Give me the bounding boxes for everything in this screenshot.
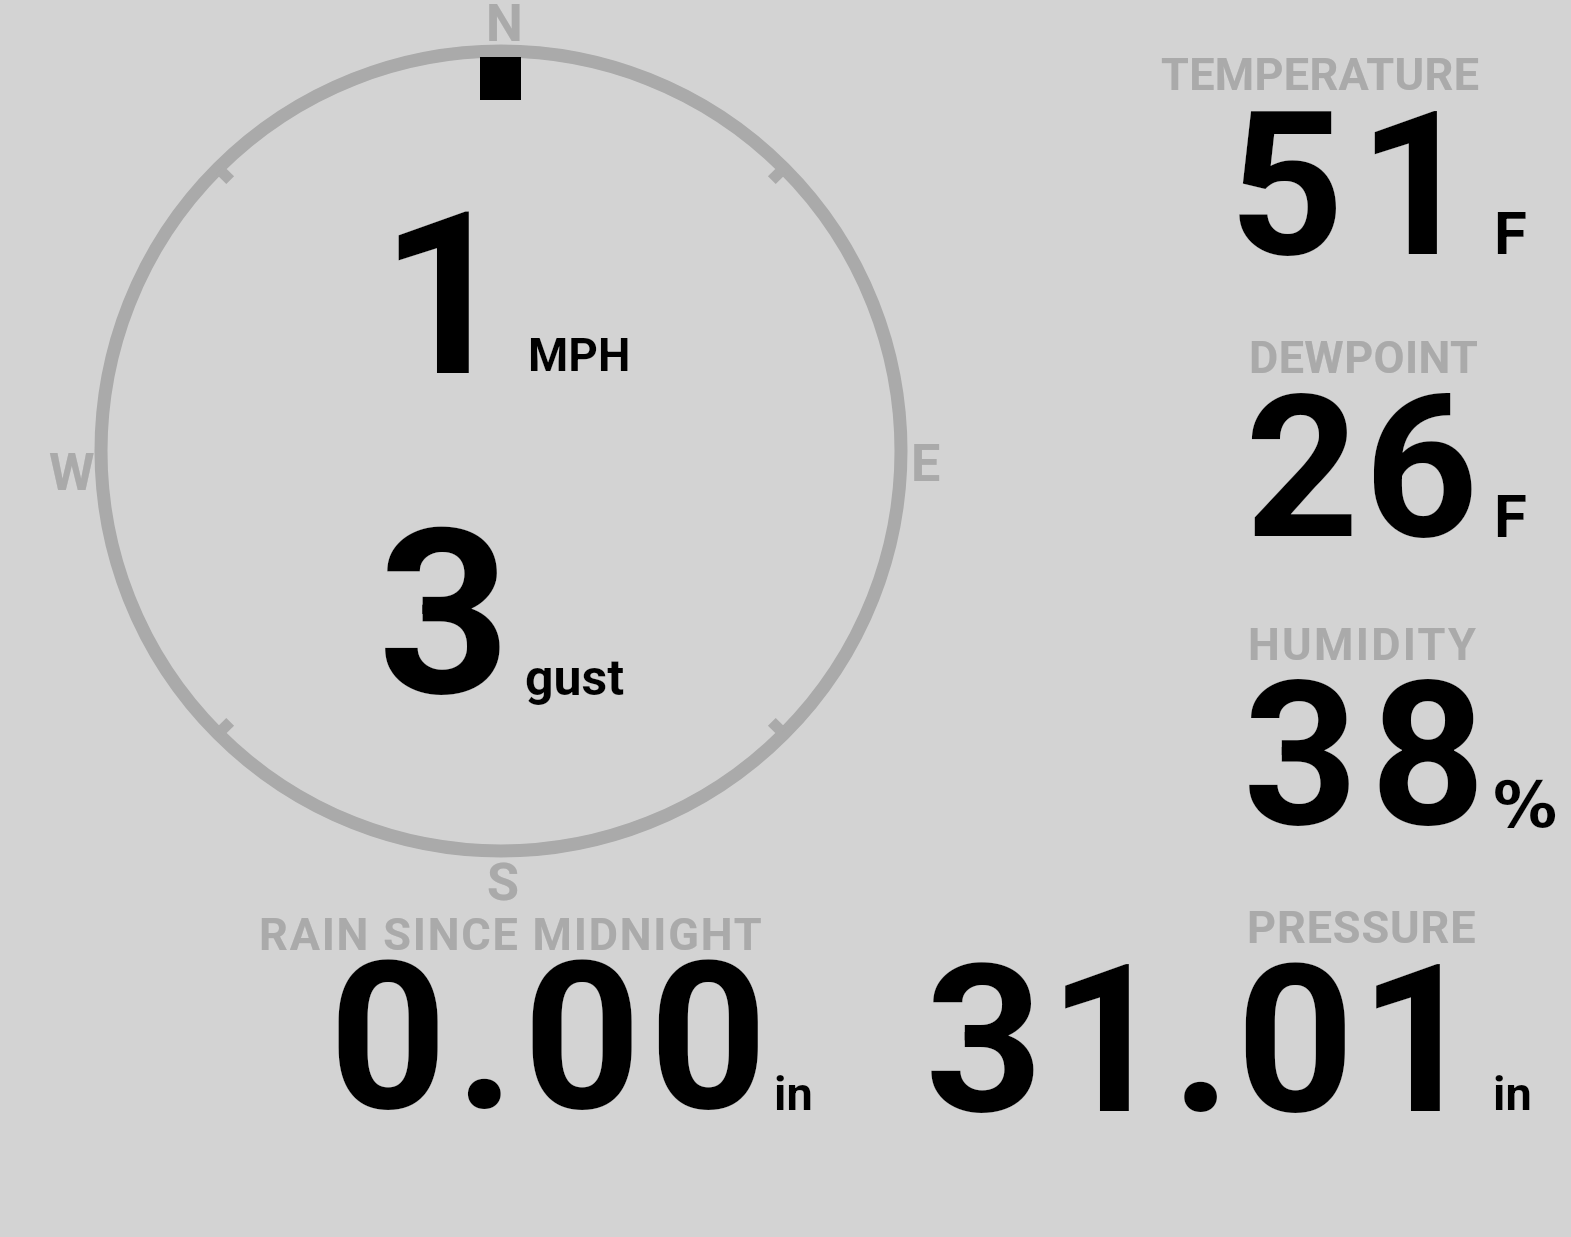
staticText: S [487,852,520,913]
staticText: PRESSURE [1247,901,1477,954]
staticText: 51 [1229,68,1488,304]
button[interactable]: Humidity 38 percent [1150,610,1570,890]
staticText: F [1494,198,1527,268]
staticText: TEMPERATURE [1161,48,1480,101]
staticText: 3 [378,479,511,750]
staticText: 31.01 [925,920,1483,1161]
button[interactable]: Pressure 31.01 inches [900,895,1560,1130]
button[interactable]: Wind direction compass, 1 miles per hour… [40,0,920,905]
staticText: 0.00 [329,917,776,1158]
staticText: % [1493,768,1558,843]
staticText: gust [525,649,625,708]
staticText: in [1493,1066,1532,1121]
staticText: HUMIDITY [1248,618,1479,671]
staticText: F [1494,481,1527,551]
staticText: in [774,1066,813,1121]
button[interactable]: Dew point 26 degrees Fahrenheit [1150,325,1570,605]
staticText: 1 [380,162,511,428]
staticText: DEWPOINT [1249,331,1479,384]
staticText: RAIN SINCE MIDNIGHT [259,908,764,961]
staticText: 26 [1245,351,1484,584]
staticText: E [911,433,941,494]
button[interactable]: Rain since midnight 0.00 inches [230,900,850,1130]
staticText: MPH [528,328,631,382]
staticText: N [486,0,523,54]
staticText: W [49,442,95,503]
button[interactable]: Temperature 51 degrees Fahrenheit [1150,40,1570,320]
staticText: 38 [1243,638,1498,874]
